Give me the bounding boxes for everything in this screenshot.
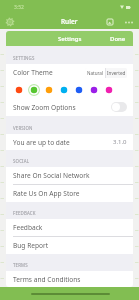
button[interactable]: Theme colour 6 (88, 84, 100, 96)
staticText: Ruler (61, 17, 78, 26)
button[interactable]: Done (103, 32, 133, 46)
staticText: Show Zoom Options (13, 103, 76, 112)
button[interactable]: Share On Social Network (6, 167, 133, 184)
button[interactable]: Gallery (103, 15, 117, 29)
staticText: FEEDBACK (13, 210, 36, 216)
staticText: Feedback (13, 223, 43, 232)
button[interactable]: Show Zoom Options (6, 98, 133, 116)
staticText: Done (110, 35, 126, 43)
button[interactable]: Theme colour 2 (28, 84, 40, 96)
button[interactable]: Natural (85, 68, 105, 78)
button[interactable]: Rate Us On App Store (6, 185, 133, 202)
button[interactable]: Theme colour 1 (13, 84, 25, 96)
staticText: Terms and Conditions (13, 275, 81, 284)
staticText: 3:52 (14, 4, 24, 11)
button[interactable]: Theme colour 7 (103, 84, 115, 96)
button[interactable]: Theme colour 5 (73, 84, 85, 96)
staticText: Share On Social Network (13, 171, 90, 180)
staticText: TERMS (13, 262, 28, 268)
button[interactable]: Terms and Conditions (6, 271, 133, 287)
staticText: You are up to date (13, 138, 70, 147)
staticText: VERSION (13, 125, 33, 131)
button[interactable]: Inverted (106, 68, 127, 78)
staticText: Color Theme (13, 68, 53, 77)
staticText: SOCIAL (13, 158, 30, 164)
staticText: Rate Us On App Store (13, 189, 80, 198)
button[interactable]: You are up to date (6, 134, 133, 150)
button[interactable]: Theme colour 3 (43, 84, 55, 96)
button[interactable]: Color Theme (6, 64, 133, 81)
staticText: Settings (58, 35, 82, 43)
button[interactable]: Show Zoom Options (111, 102, 127, 112)
staticText: Inverted (107, 70, 126, 76)
button[interactable]: Settings (3, 15, 17, 29)
staticText: SETTINGS (13, 55, 35, 61)
button[interactable]: More options (122, 15, 136, 29)
staticText: Bug Report (13, 241, 49, 250)
staticText: Natural (87, 70, 104, 76)
staticText: 3.1.0 (113, 138, 127, 146)
button[interactable]: Bug Report (6, 237, 133, 254)
button[interactable]: Feedback (6, 219, 133, 236)
button[interactable]: Theme colour 4 (58, 84, 70, 96)
